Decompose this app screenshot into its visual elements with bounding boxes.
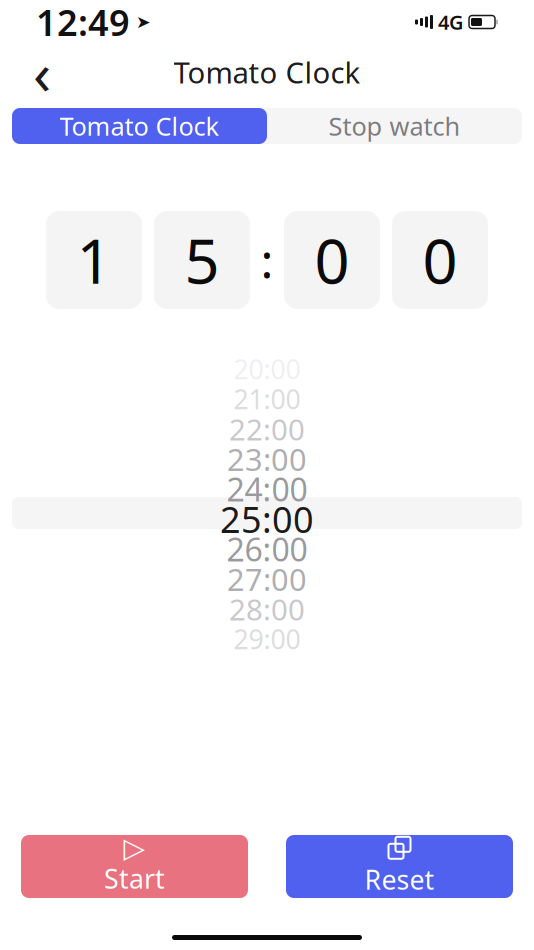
staticText: 23:00 xyxy=(227,439,307,479)
staticText: 28:00 xyxy=(229,589,305,628)
staticText: 22:00 xyxy=(229,409,305,448)
staticText: 12:49 xyxy=(36,0,130,46)
staticText: 26:00 xyxy=(226,528,307,570)
staticText: 0 xyxy=(314,219,349,301)
staticText: 5 xyxy=(184,219,219,301)
button[interactable]: Back xyxy=(18,48,66,96)
staticText: 0 xyxy=(422,219,457,301)
staticText: Reset xyxy=(364,862,434,897)
staticText: ▷ xyxy=(123,832,145,864)
button[interactable]: Reset xyxy=(286,835,513,898)
staticText: 20:00 xyxy=(233,351,300,387)
button[interactable]: ▷ xyxy=(21,835,248,898)
staticText: 27:00 xyxy=(227,559,307,599)
staticText: Start xyxy=(104,861,165,896)
staticText: 4G xyxy=(438,9,464,35)
staticText: : xyxy=(260,228,273,292)
staticText: Tomato Clock xyxy=(173,52,360,91)
staticText: 21:00 xyxy=(233,381,300,417)
button[interactable]: Tomato Clock xyxy=(12,108,267,144)
staticText: 1 xyxy=(76,219,111,301)
staticText: ➤ xyxy=(136,12,151,32)
staticText: Stop watch xyxy=(328,109,460,143)
staticText: 29:00 xyxy=(233,621,300,657)
staticText: Tomato Clock xyxy=(59,109,219,143)
staticText: ‹ xyxy=(33,33,51,111)
staticText: 24:00 xyxy=(226,468,307,510)
button[interactable]: Stop watch xyxy=(267,108,522,144)
staticText: 25:00 xyxy=(220,495,314,543)
